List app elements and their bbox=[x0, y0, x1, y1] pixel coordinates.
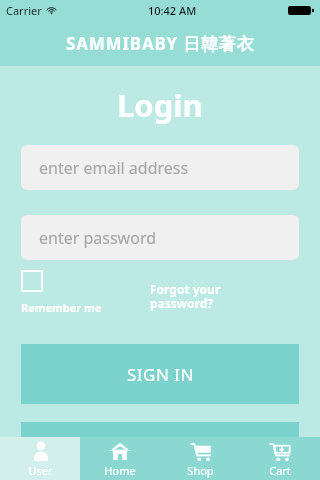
button[interactable]: Remember me bbox=[21, 270, 102, 315]
staticText: enter email address bbox=[39, 157, 189, 179]
button[interactable]: SIGN IN bbox=[21, 344, 299, 404]
staticText: SAMMIBABY 日韓著衣 bbox=[66, 32, 255, 55]
staticText: 10:42 AM bbox=[148, 3, 197, 18]
staticText: SIGN IN bbox=[127, 363, 194, 386]
button[interactable]: Home bbox=[80, 437, 160, 480]
staticText: Remember me bbox=[21, 300, 102, 315]
button[interactable]: Forgot your password? bbox=[150, 281, 260, 312]
button[interactable]: Cart bbox=[240, 437, 320, 480]
staticText: Forgot your password? bbox=[150, 281, 260, 312]
staticText: Login bbox=[117, 84, 203, 126]
staticText: Cart bbox=[269, 463, 291, 478]
staticText: Carrier bbox=[6, 3, 42, 18]
button[interactable]: enter email address bbox=[21, 145, 299, 190]
button[interactable]: User bbox=[0, 437, 80, 480]
button[interactable]: Shop bbox=[160, 437, 240, 480]
staticText: Shop bbox=[187, 463, 214, 478]
button[interactable]: SIGN UP bbox=[21, 422, 299, 480]
staticText: enter password bbox=[39, 227, 157, 249]
staticText: User bbox=[28, 463, 53, 478]
staticText: Home bbox=[104, 463, 136, 478]
staticText: SIGN UP bbox=[124, 440, 196, 463]
button[interactable]: enter password bbox=[21, 215, 299, 260]
